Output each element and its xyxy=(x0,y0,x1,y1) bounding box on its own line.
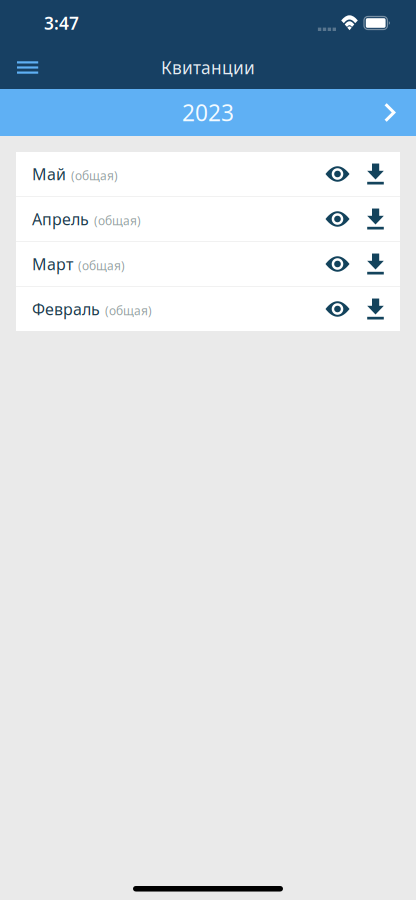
button[interactable]: Скачать xyxy=(355,287,395,331)
button[interactable]: Март xyxy=(16,242,319,286)
button[interactable]: Просмотр xyxy=(319,287,355,331)
staticText: Май xyxy=(32,163,66,185)
button[interactable]: Апрель xyxy=(16,197,319,241)
staticText: (общая) xyxy=(105,303,152,318)
staticText: Апрель xyxy=(32,208,89,230)
staticText: 2023 xyxy=(182,97,234,127)
staticText: 3:47 xyxy=(44,11,79,34)
staticText: Квитанции xyxy=(161,56,255,79)
button[interactable]: 2023 xyxy=(0,89,416,136)
staticText: (общая) xyxy=(94,213,141,228)
button[interactable]: Скачать xyxy=(355,197,395,241)
button[interactable]: Просмотр xyxy=(319,152,355,196)
button[interactable]: Просмотр xyxy=(319,242,355,286)
button[interactable]: Меню xyxy=(0,46,56,89)
button[interactable]: Скачать xyxy=(355,242,395,286)
staticText: (общая) xyxy=(71,168,118,183)
staticText: (общая) xyxy=(78,258,125,273)
button[interactable]: Февраль xyxy=(16,287,319,331)
button[interactable]: Просмотр xyxy=(319,197,355,241)
staticText: Март xyxy=(32,253,73,275)
staticText: Февраль xyxy=(32,298,100,320)
button[interactable]: Май xyxy=(16,152,319,196)
button[interactable]: Скачать xyxy=(355,152,395,196)
